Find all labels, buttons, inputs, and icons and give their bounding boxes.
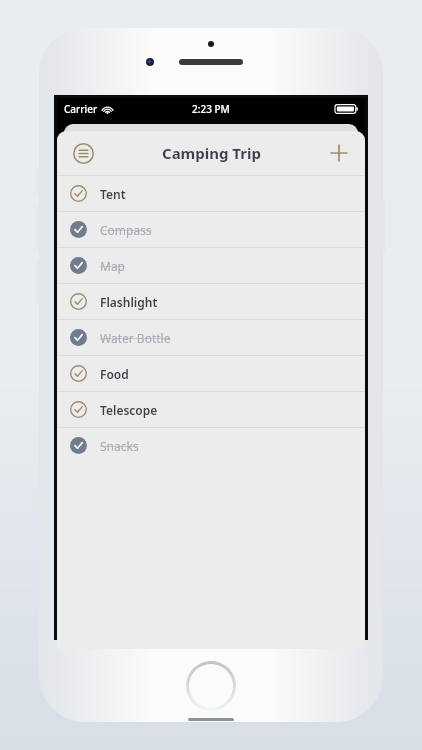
- button[interactable]: Compass: [57, 211, 365, 247]
- staticText: Tent: [100, 186, 126, 202]
- button[interactable]: Flashlight: [57, 283, 365, 319]
- staticText: Map: [100, 258, 125, 274]
- staticText: Telescope: [100, 402, 158, 418]
- staticText: Water Bottle: [100, 330, 171, 346]
- staticText: Food: [100, 366, 129, 382]
- button[interactable]: Menu: [68, 138, 98, 168]
- staticText: Snacks: [100, 438, 139, 454]
- button[interactable]: Add item: [324, 138, 354, 168]
- button[interactable]: Telescope: [57, 391, 365, 427]
- button[interactable]: Snacks: [57, 427, 365, 463]
- button[interactable]: Water Bottle: [57, 319, 365, 355]
- button[interactable]: Map: [57, 247, 365, 283]
- staticText: Flashlight: [100, 294, 158, 310]
- staticText: 2:23 PM: [192, 102, 230, 116]
- staticText: Camping Trip: [162, 143, 261, 163]
- button[interactable]: Food: [57, 355, 365, 391]
- staticText: Compass: [100, 222, 152, 238]
- staticText: Carrier: [64, 102, 98, 116]
- button[interactable]: Tent: [57, 175, 365, 211]
